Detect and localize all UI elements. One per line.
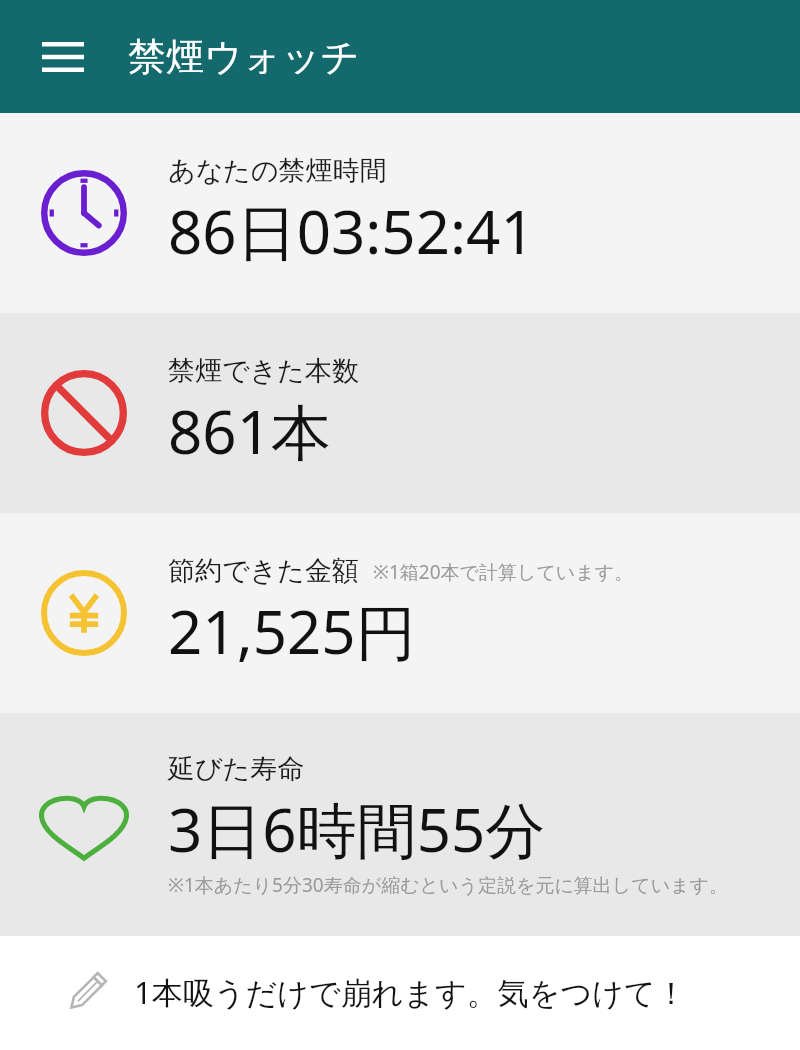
staticText: 禁煙できた本数	[168, 354, 359, 388]
button[interactable]: 延びた寿命	[0, 713, 800, 936]
staticText: 86日03:52:41	[168, 190, 535, 272]
staticText: 節約できた金額	[168, 554, 359, 588]
staticText: ※1箱20本で計算しています。	[373, 559, 634, 585]
staticText: 861本	[168, 390, 331, 472]
staticText: 21,525円	[168, 590, 416, 672]
button[interactable]: 1本吸うだけで崩れます。気をつけて！	[0, 936, 800, 1048]
staticText: 1本吸うだけで崩れます。気をつけて！	[134, 971, 687, 1013]
staticText: 延びた寿命	[168, 752, 305, 786]
staticText: ※1本あたり5分30寿命が縮むという定説を元に算出しています。	[168, 872, 729, 898]
button[interactable]: 節約できた金額	[0, 513, 800, 713]
button[interactable]: 禁煙できた本数	[0, 313, 800, 513]
button[interactable]: Open navigation menu	[28, 22, 98, 92]
button[interactable]: あなたの禁煙時間	[0, 113, 800, 313]
staticText: 禁煙ウォッチ	[128, 33, 360, 81]
staticText: 3日6時間55分	[168, 788, 546, 870]
staticText: あなたの禁煙時間	[168, 154, 387, 188]
